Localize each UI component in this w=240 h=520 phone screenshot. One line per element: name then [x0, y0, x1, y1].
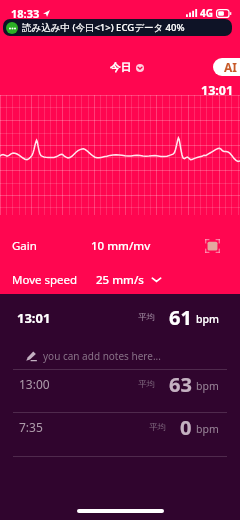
staticText: Gain: [12, 238, 37, 254]
button[interactable]: 読み込み中 (今日<1>) ECGデータ 40%: [3, 19, 232, 36]
button[interactable]: 今日: [110, 61, 144, 74]
staticText: you can add notes here...: [43, 349, 161, 363]
staticText: AI: [224, 59, 237, 75]
staticText: 63: [169, 371, 192, 398]
button[interactable]: Move speed: [0, 265, 240, 294]
button[interactable]: you can add notes here...: [0, 342, 240, 368]
staticText: 今日: [110, 61, 131, 74]
staticText: 18:33: [11, 6, 40, 21]
staticText: bpm: [196, 379, 219, 393]
staticText: bpm: [196, 422, 219, 436]
staticText: 13:00: [19, 376, 50, 392]
staticText: bpm: [196, 312, 219, 326]
staticText: 13:01: [201, 82, 234, 99]
staticText: 平均: [149, 422, 166, 433]
staticText: 平均: [138, 312, 155, 323]
button[interactable]: AI assistant: [213, 58, 240, 76]
button[interactable]: 13:01: [0, 302, 240, 333]
staticText: 4G: [200, 6, 213, 20]
staticText: 0: [180, 414, 192, 441]
button[interactable]: Fullscreen: [202, 236, 222, 256]
staticText: Move speed: [12, 272, 78, 288]
staticText: 61: [169, 304, 192, 331]
staticText: 13:01: [17, 309, 51, 327]
staticText: 平均: [138, 379, 155, 390]
button[interactable]: 7:35: [0, 411, 240, 443]
staticText: 25 mm/s: [96, 272, 144, 288]
button[interactable]: 13:00: [0, 368, 240, 400]
staticText: 読み込み中 (今日<1>) ECGデータ 40%: [22, 21, 185, 34]
staticText: 7:35: [19, 419, 43, 435]
staticText: 10 mm/mv: [91, 238, 151, 254]
